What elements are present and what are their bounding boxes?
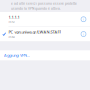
- staticText: i: [83, 32, 84, 36]
- button[interactable]: PC vpn.uniwa.gr/LWAN-STAFF: [0, 27, 90, 41]
- staticText: i: [83, 17, 84, 22]
- staticText: IKEv2: [8, 20, 15, 24]
- button[interactable]: Aggiungi VPN...: [0, 50, 90, 60]
- staticText: 1.1.1.1: [8, 14, 19, 20]
- staticText: e ad altri servizi possono essere protet…: [11, 1, 77, 6]
- staticText: Aggiungi VPN...: [4, 53, 30, 58]
- button[interactable]: More Info: [77, 27, 90, 41]
- staticText: PC vpn.uniwa.gr/LWAN-STAFF: [8, 29, 61, 35]
- button[interactable]: More Info: [77, 12, 90, 26]
- staticText: usando la VPN quando è attiva.: [11, 6, 61, 11]
- button[interactable]: 1.1.1.1: [0, 12, 90, 26]
- staticText: IKEv2: [8, 35, 15, 39]
